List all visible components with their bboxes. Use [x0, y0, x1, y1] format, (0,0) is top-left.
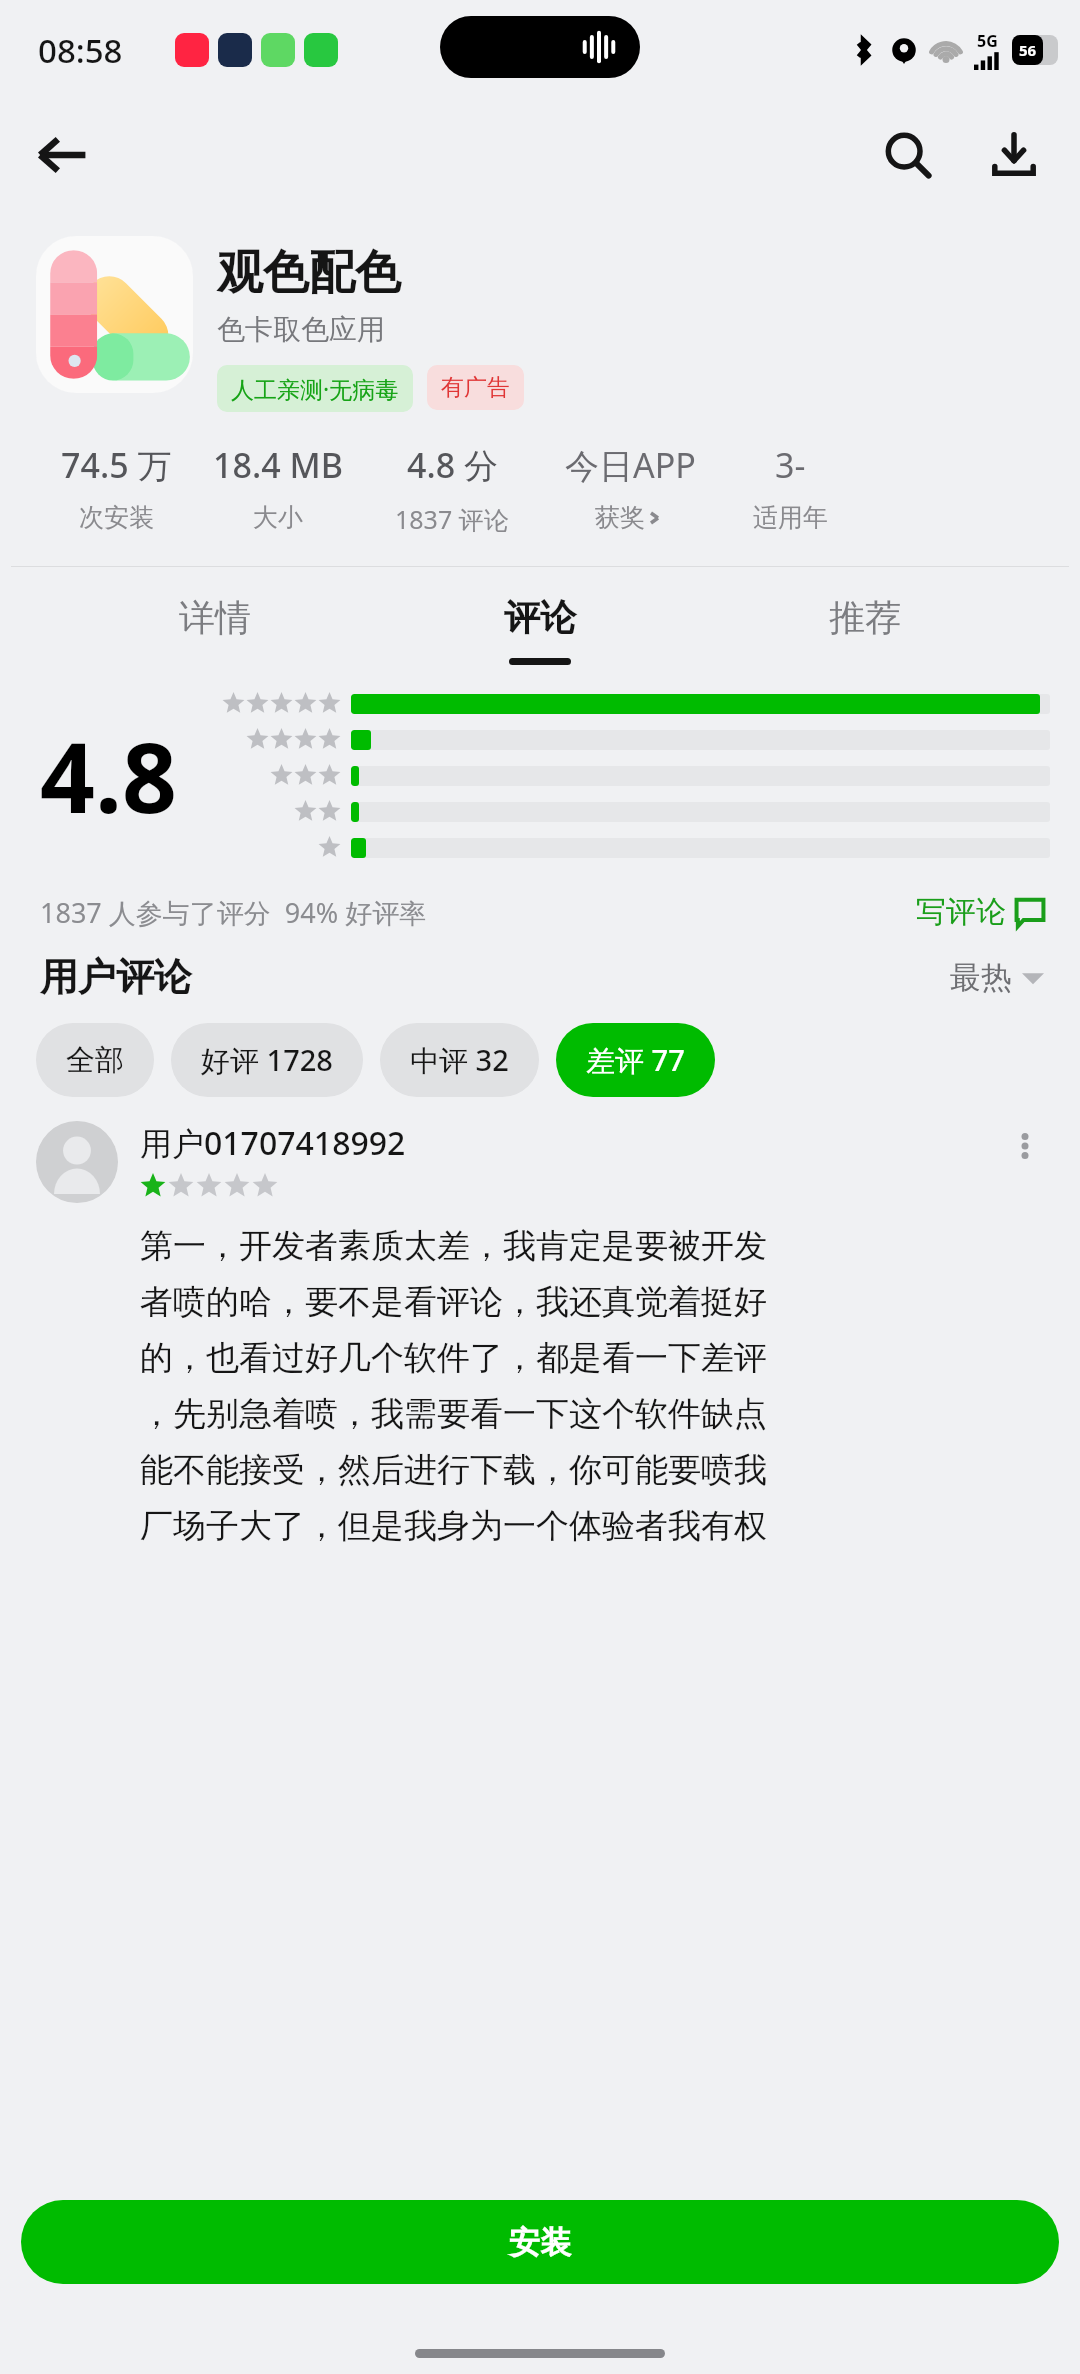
staticText: 评论	[504, 595, 576, 640]
button[interactable]: 安装	[21, 2200, 1059, 2284]
button[interactable]: 人工亲测·无病毒	[217, 365, 413, 412]
staticText: 4.8	[40, 710, 177, 841]
staticText: 推荐	[829, 595, 901, 640]
staticText: 全部	[66, 1042, 124, 1079]
button[interactable]: 中评 32	[380, 1023, 539, 1097]
staticText: 人工亲测·无病毒	[231, 373, 399, 404]
button[interactable]: 差评 77	[556, 1023, 715, 1097]
staticText: 厂场子大了，但是我身为一个体验者我有权	[140, 1505, 767, 1547]
staticText: 者喷的哈，要不是看评论，我还真觉着挺好	[140, 1281, 767, 1323]
staticText: 第一，开发者素质太差，我肯定是要被开发	[140, 1225, 767, 1267]
staticText: 大小	[253, 502, 303, 533]
staticText: 详情	[179, 595, 251, 640]
button[interactable]: 写评论	[916, 893, 1046, 931]
staticText: 今日APP	[565, 442, 696, 488]
button[interactable]: 有广告	[427, 365, 524, 410]
staticText: 4.8 分	[407, 442, 498, 488]
button[interactable]: 评论	[430, 567, 650, 692]
staticText: 的，也看过好几个软件了，都是看一下差评	[140, 1337, 767, 1379]
button[interactable]: 推荐	[755, 567, 975, 692]
staticText: 08:58	[38, 28, 123, 73]
staticText: 次安装	[79, 502, 154, 533]
staticText: 适用年	[753, 502, 828, 533]
staticText: 安装	[509, 2223, 571, 2262]
staticText: 好评 1728	[201, 1040, 333, 1080]
staticText: 1837 评论	[395, 502, 509, 536]
staticText: 色卡取色应用	[217, 312, 385, 347]
button[interactable]: 好评 1728	[171, 1023, 363, 1097]
staticText: 有广告	[441, 373, 510, 402]
staticText: 观色配色	[217, 244, 401, 302]
staticText: 用户01707418992	[140, 1121, 406, 1165]
staticText: ，先别急着喷，我需要看一下这个软件缺点	[140, 1393, 767, 1435]
button[interactable]: 最热	[950, 958, 1044, 997]
button[interactable]: 今日APP	[540, 442, 720, 533]
button[interactable]: 详情	[105, 567, 325, 692]
staticText: 1837 人参与了评分 94% 好评率	[40, 894, 427, 931]
button[interactable]: Back	[26, 119, 98, 191]
staticText: 中评 32	[410, 1040, 509, 1080]
button[interactable]: Downloads	[982, 123, 1046, 187]
staticText: 74.5 万	[61, 442, 172, 488]
staticText: 3-	[775, 442, 806, 488]
staticText: 写评论	[916, 893, 1006, 931]
staticText: 最热	[950, 958, 1012, 997]
button[interactable]: 全部	[36, 1023, 154, 1097]
staticText: 56	[1019, 40, 1037, 60]
staticText: 能不能接受，然后进行下载，你可能要喷我	[140, 1449, 767, 1491]
staticText: 用户评论	[40, 953, 192, 1001]
staticText: 获奖	[595, 502, 645, 533]
button[interactable]: More options	[1000, 1121, 1050, 1171]
staticText: 5G	[977, 30, 998, 52]
staticText: 18.4 MB	[213, 442, 343, 488]
staticText: 差评 77	[586, 1040, 685, 1080]
button[interactable]: Search	[876, 123, 940, 187]
